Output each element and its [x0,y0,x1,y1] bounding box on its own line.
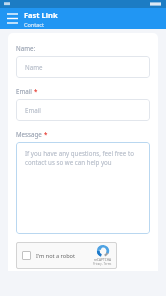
staticText: reCAPTCHA [94,258,112,262]
staticText: I'm not a robot [36,252,76,260]
button[interactable]: If you have any questions, feel free to … [16,142,150,234]
staticText: Name: [16,44,36,52]
staticText: Message [16,130,42,138]
staticText: Name [25,63,43,71]
staticText: Email [16,87,32,95]
staticText: Fast Link [24,10,58,20]
staticText: Privacy - Terms [93,262,112,266]
staticText: * [44,130,48,138]
button[interactable]: Open navigation menu [0,8,24,29]
button[interactable]: Email [16,99,150,121]
button[interactable]: Name [16,56,150,78]
button[interactable]: I'm not a robot [16,242,117,269]
staticText: Contact [24,21,44,28]
staticText: * [34,87,38,95]
staticText: If you have any questions, feel free to … [25,149,142,167]
staticText: Email [25,106,41,114]
